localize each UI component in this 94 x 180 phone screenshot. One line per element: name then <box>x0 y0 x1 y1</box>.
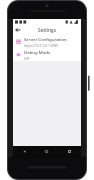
button[interactable]: Debug Mode <box>13 48 81 61</box>
staticText: Server Configuration <box>24 36 67 42</box>
staticText: https://127.0.0.1:8081 <box>24 43 59 48</box>
button[interactable]: Back <box>13 146 35 157</box>
staticText: Settings <box>38 27 56 33</box>
button[interactable]: Home <box>35 146 58 157</box>
staticText: Off <box>24 56 29 61</box>
button[interactable]: Server Configuration <box>13 35 81 48</box>
button[interactable]: Back <box>13 25 23 35</box>
button[interactable]: Recents <box>58 146 81 157</box>
staticText: Debug Mode <box>24 49 51 55</box>
